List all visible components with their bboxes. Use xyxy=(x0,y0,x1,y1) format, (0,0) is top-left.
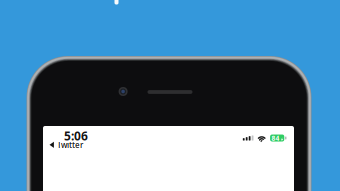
button[interactable]: Twitter xyxy=(49,139,83,150)
staticText: Twitter xyxy=(57,139,83,150)
staticText: 5:06 xyxy=(64,128,88,144)
staticText: 84 xyxy=(271,134,279,143)
